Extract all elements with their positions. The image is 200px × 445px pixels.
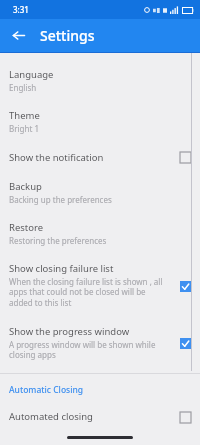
button[interactable]: Restore bbox=[0, 213, 200, 254]
button[interactable]: Language bbox=[0, 60, 200, 101]
staticText: 3:31 bbox=[13, 4, 29, 15]
button[interactable]: Back bbox=[8, 25, 29, 46]
button[interactable]: Show the notification bbox=[0, 142, 200, 172]
staticText: A progress window will be shown while cl… bbox=[9, 339, 171, 361]
staticText: Show the progress window bbox=[9, 325, 130, 338]
button[interactable]: Show the progress window bbox=[0, 317, 200, 369]
staticText: Restoring the preferences bbox=[9, 235, 107, 246]
staticText: Backing up the preferences bbox=[9, 194, 112, 205]
button[interactable]: Enabled bbox=[178, 279, 192, 293]
staticText: Bright 1 bbox=[9, 123, 39, 134]
staticText: Settings bbox=[40, 26, 95, 45]
staticText: Automatic Closing bbox=[9, 384, 84, 396]
button[interactable]: Theme bbox=[0, 101, 200, 142]
button[interactable]: Backup bbox=[0, 172, 200, 213]
staticText: Language bbox=[9, 68, 54, 81]
button[interactable]: Disabled bbox=[178, 150, 192, 164]
staticText: Show the notification bbox=[9, 151, 104, 164]
staticText: When the closing failure list is shown ,… bbox=[9, 276, 171, 309]
staticText: Show closing failure list bbox=[9, 262, 114, 275]
button[interactable]: Enabled bbox=[178, 336, 192, 350]
staticText: English bbox=[9, 82, 37, 93]
staticText: Theme bbox=[9, 109, 40, 122]
button[interactable]: Disabled bbox=[178, 410, 192, 424]
button[interactable]: Automated closing bbox=[0, 402, 200, 432]
staticText: Restore bbox=[9, 221, 44, 234]
button[interactable]: Show closing failure list bbox=[0, 254, 200, 317]
staticText: Backup bbox=[9, 180, 42, 193]
staticText: Automated closing bbox=[9, 410, 93, 423]
